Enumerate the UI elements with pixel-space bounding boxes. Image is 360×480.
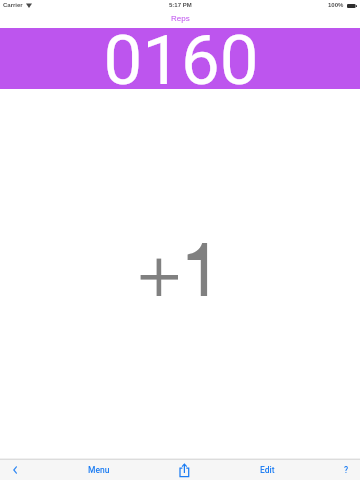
staticText: Edit <box>260 465 275 475</box>
staticText: 0160 <box>103 20 259 101</box>
button[interactable]: Share <box>168 460 201 480</box>
button[interactable]: Back <box>0 460 30 480</box>
staticText: Carrier <box>3 2 23 9</box>
button[interactable]: Edit <box>250 460 285 480</box>
staticText: Reps <box>171 14 190 23</box>
staticText: 5:17 PM <box>169 2 192 9</box>
staticText: Menu <box>88 465 110 475</box>
staticText: ? <box>344 465 349 475</box>
button[interactable]: Help <box>332 460 360 480</box>
button[interactable]: Add one rep <box>0 89 360 459</box>
button[interactable]: Menu <box>77 460 121 480</box>
staticText: 100% <box>328 2 344 9</box>
